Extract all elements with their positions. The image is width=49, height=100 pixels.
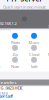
button[interactable]: Music [28, 33, 39, 44]
staticText: Recent transfers [0, 80, 16, 85]
button[interactable]: Report.pdf [0, 94, 49, 100]
staticText: START [47, 23, 49, 29]
staticText: Music [28, 40, 39, 45]
button[interactable]: Photo [9, 33, 20, 44]
staticText: Safe [30, 64, 37, 69]
button[interactable]: Safe [28, 57, 39, 68]
staticText: Note [11, 64, 19, 69]
staticText: FTP Server [6, 0, 42, 3]
button[interactable]: IMG_0423.HEIC [0, 86, 49, 94]
staticText: Photo [10, 40, 19, 45]
staticText: Quick start in one minute [3, 4, 46, 10]
staticText: Cloud [29, 52, 39, 57]
button[interactable]: Zip [9, 45, 20, 56]
button[interactable]: More [47, 45, 49, 56]
staticText: Zip [12, 52, 17, 57]
button[interactable]: Note [9, 57, 20, 68]
staticText: 2.4 MB [0, 90, 8, 96]
staticText: Not running [0, 26, 10, 31]
button[interactable]: Cast [0, 57, 1, 68]
staticText: IMG_0423.HEIC [0, 85, 23, 90]
staticText: More [48, 52, 49, 57]
staticText: Report.pdf [0, 93, 12, 98]
button[interactable]: Cloud [28, 45, 39, 56]
staticText: ftp://192.168.1.2 [0, 21, 16, 26]
